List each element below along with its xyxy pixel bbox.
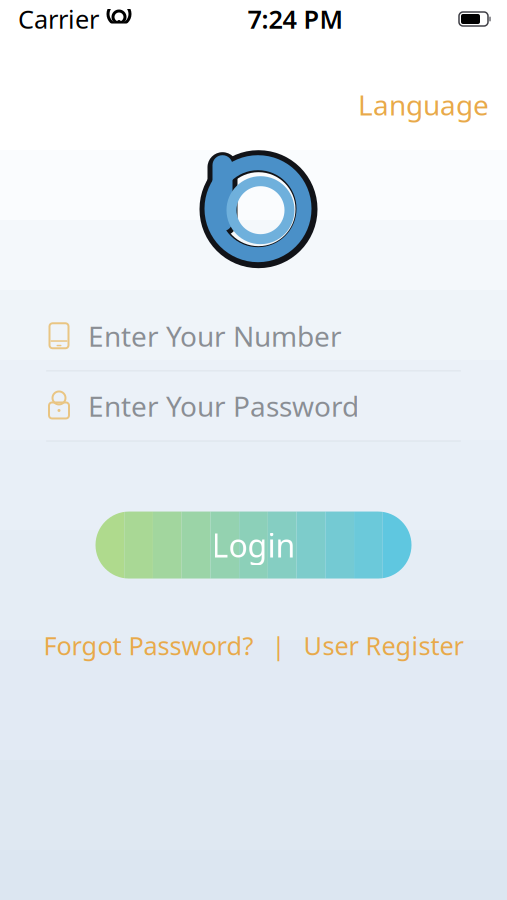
button[interactable]: Language — [348, 80, 499, 129]
staticText: Login — [211, 524, 295, 566]
staticText: Enter Your Number — [88, 317, 342, 354]
button[interactable]: Enter Your Password — [46, 371, 461, 441]
staticText: Forgot Password? — [43, 628, 253, 662]
button[interactable]: User Register — [299, 620, 467, 670]
staticText: Enter Your Password — [88, 387, 359, 425]
staticText: 7:24 PM — [247, 2, 343, 36]
staticText: Carrier — [18, 2, 99, 36]
staticText: Language — [358, 86, 489, 123]
button[interactable]: Forgot Password? — [39, 620, 257, 670]
staticText: | — [257, 628, 299, 662]
button[interactable]: Enter Your Number — [46, 301, 461, 370]
button[interactable]: Login — [95, 511, 411, 578]
staticText: User Register — [303, 628, 463, 662]
